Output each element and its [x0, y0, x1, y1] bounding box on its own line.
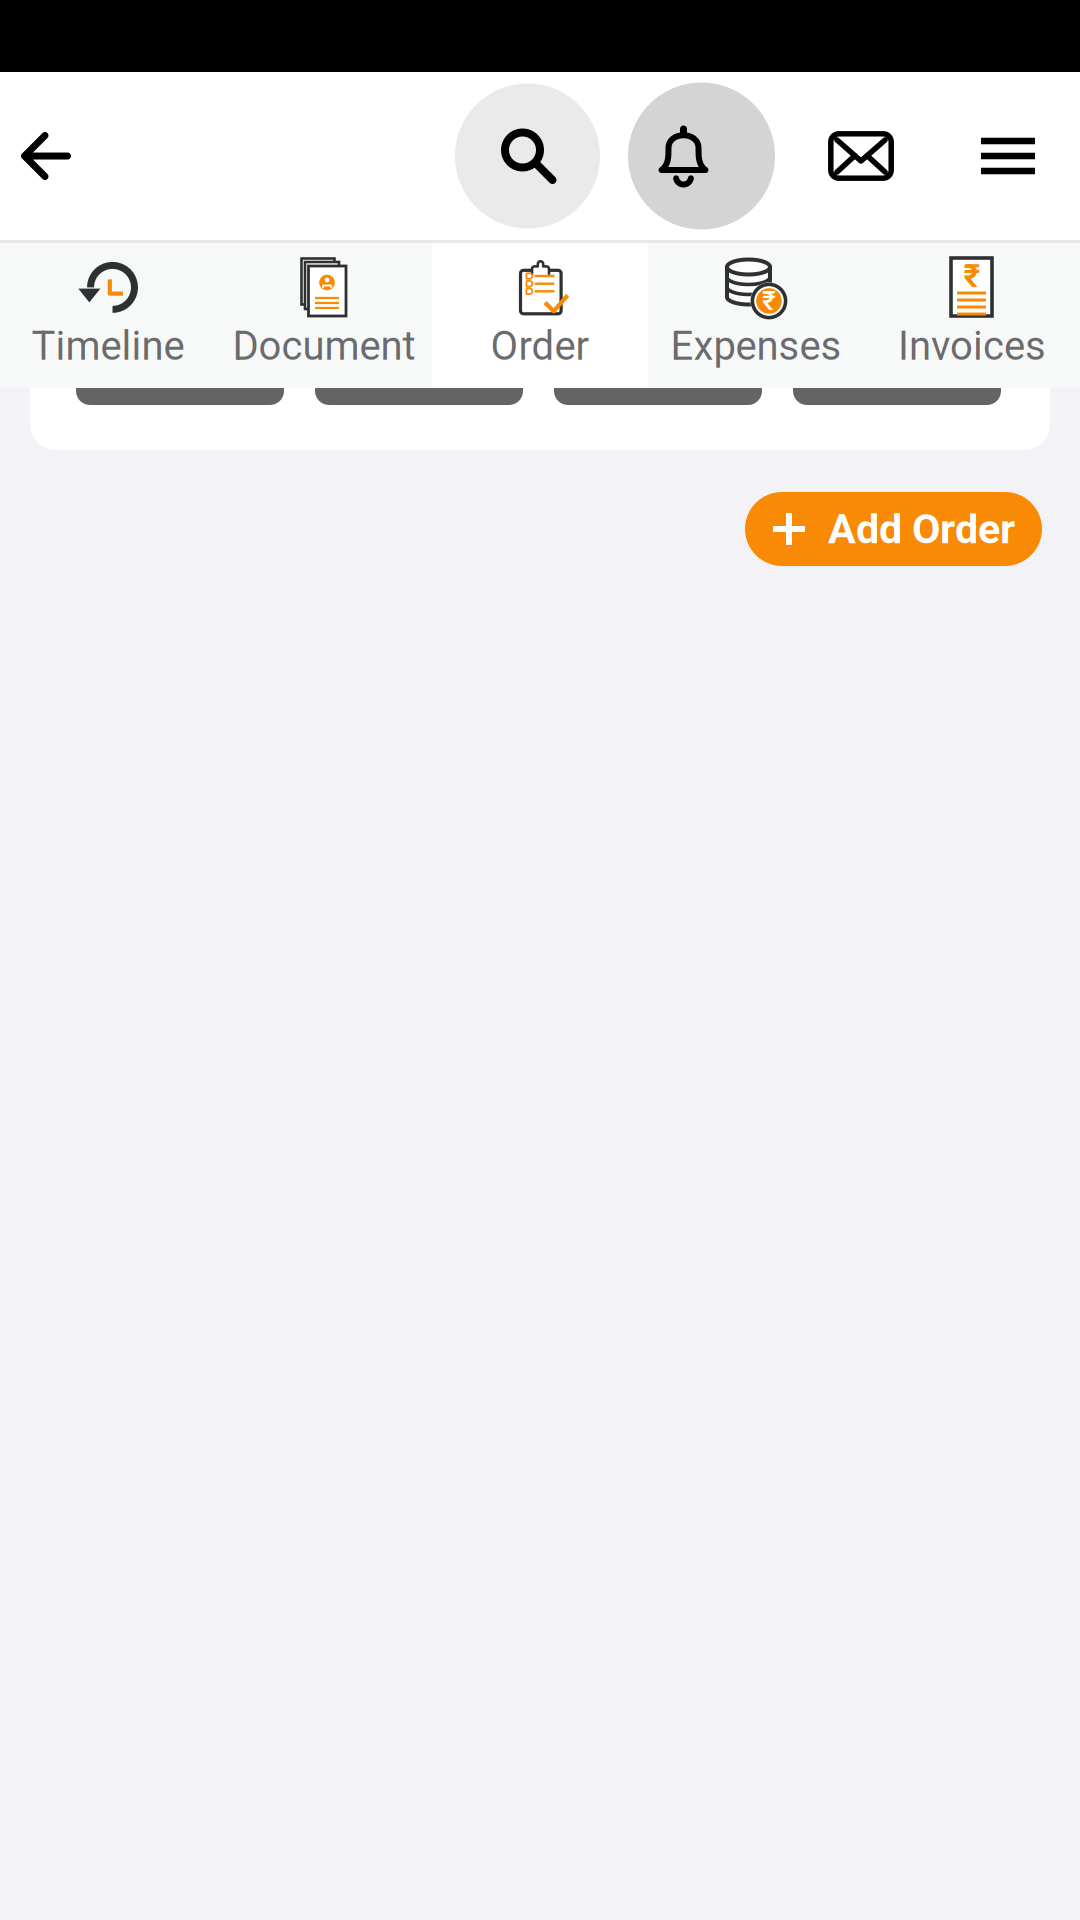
- button[interactable]: Search: [455, 72, 600, 240]
- staticText: Expenses: [670, 323, 841, 369]
- button[interactable]: ₹: [864, 243, 1080, 388]
- staticText: ₹: [963, 257, 980, 295]
- button[interactable]: Add Order: [745, 492, 1042, 566]
- button[interactable]: Notifications: [628, 72, 775, 240]
- staticText: Add Order: [828, 505, 1015, 553]
- staticText: Order: [490, 323, 589, 369]
- staticText: Document: [232, 323, 415, 369]
- staticText: ₹: [762, 285, 776, 317]
- button[interactable]: Back: [0, 72, 90, 240]
- button[interactable]: ₹: [648, 243, 864, 388]
- button[interactable]: Menu: [977, 72, 1039, 240]
- button[interactable]: Messages: [822, 72, 900, 240]
- staticText: Timeline: [31, 323, 184, 369]
- button[interactable]: Timeline: [0, 243, 216, 388]
- staticText: Invoices: [898, 323, 1046, 369]
- button[interactable]: Order: [432, 243, 648, 388]
- button[interactable]: Document: [216, 243, 432, 388]
